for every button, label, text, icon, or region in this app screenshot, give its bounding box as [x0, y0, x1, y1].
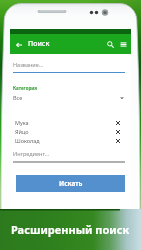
staticText: Мука — [15, 119, 29, 126]
staticText: Поиск — [28, 39, 50, 49]
button[interactable]: Back — [12, 38, 25, 51]
button[interactable]: Все — [13, 94, 125, 101]
button[interactable]: Яйцо — [13, 127, 125, 136]
staticText: Ингредиент... — [13, 150, 50, 157]
staticText: Категория — [13, 85, 38, 91]
staticText: Расширенный поиск — [11, 222, 130, 237]
button[interactable]: Menu — [117, 38, 130, 51]
button[interactable]: Search — [104, 38, 117, 51]
button[interactable]: Remove Яйцо — [113, 127, 122, 136]
staticText: Все — [13, 94, 23, 101]
staticText: Яйцо — [15, 128, 29, 135]
button[interactable]: Шоколад — [13, 136, 125, 145]
staticText: Искать — [59, 179, 83, 188]
staticText: Шоколад — [15, 137, 40, 144]
button[interactable]: Мука — [13, 118, 125, 127]
button[interactable]: Remove Мука — [113, 118, 122, 127]
staticText: Название... — [13, 61, 44, 68]
button[interactable]: Remove Шоколад — [113, 136, 122, 145]
button[interactable]: Искать — [16, 175, 125, 192]
